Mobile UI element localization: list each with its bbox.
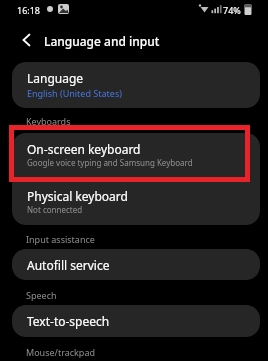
staticText: Physical keyboard bbox=[27, 188, 128, 204]
staticText: Input assistance bbox=[26, 233, 95, 245]
staticText: Mouse/trackpad bbox=[26, 346, 95, 358]
staticText: Language bbox=[27, 70, 84, 86]
staticText: English (United States) bbox=[27, 87, 122, 99]
button[interactable]: On-screen keyboard bbox=[12, 133, 260, 179]
button[interactable] bbox=[12, 26, 40, 54]
button[interactable]: Autofill service bbox=[12, 249, 260, 280]
staticText: Google voice typing and Samsung Keyboard bbox=[27, 157, 193, 168]
staticText: Keyboards bbox=[26, 115, 71, 127]
button[interactable]: Text-to-speech bbox=[12, 305, 260, 337]
staticText: Text-to-speech bbox=[27, 313, 110, 329]
staticText: Language and input bbox=[44, 33, 160, 49]
staticText: 16:18 bbox=[17, 4, 41, 16]
button[interactable]: Physical keyboard bbox=[12, 179, 260, 225]
staticText: 74% bbox=[223, 4, 241, 16]
staticText: On-screen keyboard bbox=[27, 141, 141, 157]
staticText: Not connected bbox=[27, 204, 83, 215]
staticText: Autofill service bbox=[27, 257, 110, 273]
staticText: Speech bbox=[26, 289, 57, 301]
button[interactable]: Language bbox=[12, 62, 260, 108]
